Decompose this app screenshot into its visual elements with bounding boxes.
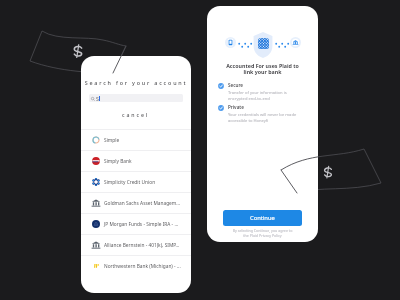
staticText: Private bbox=[228, 104, 244, 110]
staticText: Your credentials will never be made acce… bbox=[228, 112, 297, 124]
button[interactable]: Continue bbox=[223, 210, 302, 226]
staticText: By selecting Continue, you agree to the … bbox=[207, 228, 318, 238]
button[interactable]: S bbox=[89, 94, 183, 102]
staticText: Northwestern Bank (Michigan) - ... bbox=[104, 263, 181, 270]
button[interactable]: Simple bbox=[81, 130, 191, 150]
button[interactable]: Goldman Sachs Asset Managem... bbox=[81, 193, 191, 213]
staticText: Simple bbox=[104, 137, 120, 144]
button[interactable]: Simplicity Credit Union bbox=[81, 172, 191, 192]
staticText: Simply Bank bbox=[104, 158, 132, 165]
button[interactable]: cancel bbox=[81, 109, 191, 119]
button[interactable]: Alliance Bernstein - 401(k), SIMP... bbox=[81, 235, 191, 255]
staticText: Continue bbox=[250, 214, 275, 222]
staticText: Goldman Sachs Asset Managem... bbox=[104, 200, 181, 207]
staticText: S bbox=[96, 95, 99, 102]
staticText: Accounted For uses Plaid to link your ba… bbox=[207, 62, 318, 76]
button[interactable]: Simply Bank bbox=[81, 151, 191, 171]
staticText: Search for your account bbox=[81, 79, 191, 86]
button[interactable]: Northwestern Bank (Michigan) - ... bbox=[81, 256, 191, 276]
staticText: Secure bbox=[228, 82, 244, 88]
staticText: Alliance Bernstein - 401(k), SIMP... bbox=[104, 242, 180, 249]
button[interactable]: JP Morgan Funds - Simple IRA - ... bbox=[81, 214, 191, 234]
staticText: Transfer of your information is encrypte… bbox=[228, 90, 287, 102]
staticText: cancel bbox=[122, 111, 150, 118]
staticText: JP Morgan Funds - Simple IRA - ... bbox=[104, 221, 179, 228]
staticText: Simplicity Credit Union bbox=[104, 179, 156, 186]
